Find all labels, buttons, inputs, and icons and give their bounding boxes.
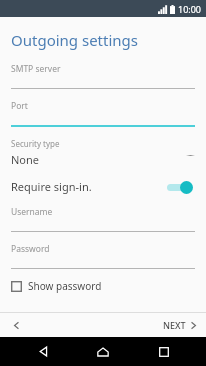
button[interactable]: Require sign-in toggle <box>165 180 195 194</box>
staticText: Security type <box>11 138 60 149</box>
staticText: Password <box>11 243 50 255</box>
staticText: Outgoing settings <box>11 30 138 50</box>
button[interactable]: Show password <box>11 278 102 294</box>
staticText: Username <box>11 206 53 218</box>
button[interactable]: SMTP server <box>11 63 195 89</box>
button[interactable]: Username <box>11 206 195 232</box>
button[interactable]: Port <box>11 100 195 127</box>
button[interactable]: Security type <box>11 137 195 168</box>
staticText: Require sign-in. <box>11 179 165 194</box>
staticText: None <box>11 152 40 167</box>
button[interactable]: Require sign-in. <box>11 179 195 194</box>
staticText: Show password <box>28 279 102 293</box>
button[interactable]: Previous <box>0 313 32 337</box>
staticText: SMTP server <box>11 63 61 75</box>
button[interactable]: Recent apps <box>146 337 182 366</box>
button[interactable]: Back <box>25 337 61 366</box>
button[interactable]: Home <box>85 337 121 366</box>
staticText: NEXT <box>163 319 186 331</box>
button[interactable]: Password <box>11 243 195 269</box>
staticText: 10:00 <box>178 3 202 15</box>
staticText: Port <box>11 100 28 112</box>
button[interactable]: NEXT <box>154 315 206 335</box>
